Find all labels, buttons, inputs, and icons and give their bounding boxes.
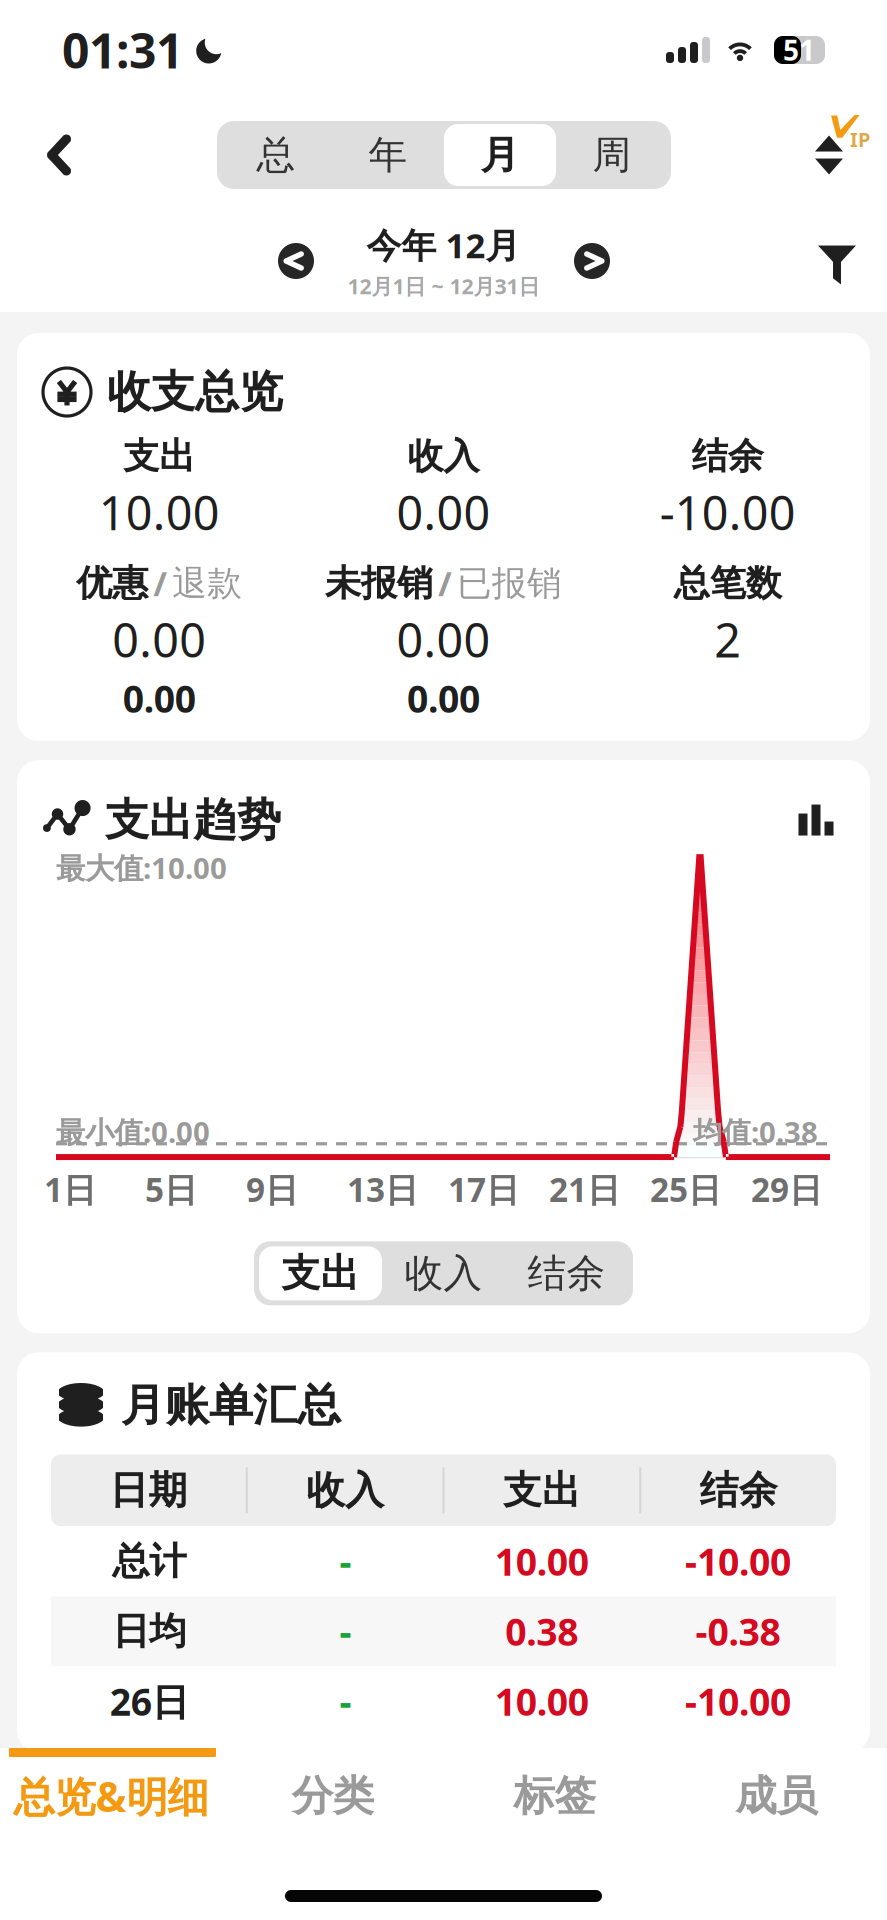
button[interactable]: 结余 [505,1246,628,1300]
staticText: 5日 [145,1167,197,1211]
staticText: - [339,1537,351,1586]
staticText: 收入 [306,1467,384,1514]
staticText: 日期 [109,1467,187,1514]
button[interactable]: 分类 [222,1757,444,1835]
staticText: 已报销 [457,562,562,605]
staticText: 13日 [347,1167,418,1211]
staticText: - [339,1677,351,1726]
staticText: 最小值:0.00 [56,1112,210,1151]
staticText: 25日 [650,1167,721,1211]
staticText: 月 [480,131,519,179]
staticText: 总 [256,131,295,179]
button[interactable]: 日均 [51,1596,836,1666]
staticText: 0.00 [407,673,480,723]
staticText: 总览&明细 [13,1769,208,1823]
staticText: 0.00 [112,608,206,670]
staticText: 周 [592,131,631,179]
staticText: 0.00 [123,673,196,723]
staticText: - [339,1607,351,1656]
staticText: 结余 [700,1467,778,1514]
button[interactable]: Previous month [278,243,314,279]
staticText: -0.38 [695,1607,780,1656]
staticText: 2 [714,608,741,670]
staticText: 支出趋势 [105,793,281,847]
staticText: 51 [783,31,815,69]
staticText: 退款 [172,562,242,605]
staticText: 9日 [246,1167,298,1211]
staticText: 10.00 [495,1677,589,1726]
staticText: 01:31 [62,18,183,82]
button[interactable]: Back [0,112,103,197]
staticText: 收支总览 [107,365,283,419]
button[interactable]: 周 [556,124,668,186]
button[interactable]: 支出 [259,1246,382,1300]
staticText: 12月1日 ~ 12月31日 [347,272,539,300]
staticText: 0.38 [505,1607,578,1656]
staticText: 收入 [407,434,479,478]
button[interactable]: Filter [792,219,887,302]
staticText: / [153,561,167,605]
staticText: 均值:0.38 [693,1112,818,1151]
button[interactable]: 总览&明细 [0,1757,222,1835]
button[interactable]: 成员 [665,1757,887,1835]
staticText: 支出 [503,1467,581,1514]
staticText: IP [850,126,870,153]
button[interactable]: Sort [785,123,887,186]
staticText: 10.00 [99,481,220,543]
staticText: 17日 [448,1167,519,1211]
staticText: 26日 [110,1677,189,1726]
staticText: 年 [368,131,407,179]
staticText: 未报销 [325,561,433,605]
staticText: 收入 [404,1250,482,1297]
staticText: 支出 [123,434,195,478]
button[interactable]: Next month [574,243,610,279]
staticText: 0.00 [396,481,490,543]
button[interactable]: 26日 [51,1666,836,1736]
staticText: 支出 [281,1250,359,1297]
staticText: 21日 [549,1167,620,1211]
staticText: 结余 [692,434,764,478]
staticText: 今年 12月 [366,222,520,268]
staticText: / [438,561,452,605]
button[interactable]: 年 [332,124,444,186]
staticText: 最大值:10.00 [56,848,227,887]
button[interactable]: 月 [444,124,556,186]
staticText: 总笔数 [674,561,782,605]
staticText: -10.00 [685,1677,791,1726]
button[interactable]: 标签 [443,1757,665,1835]
staticText: 总计 [112,1538,186,1584]
button[interactable]: Chart type [788,792,844,848]
staticText: 结余 [527,1250,605,1297]
staticText: 标签 [513,1771,595,1821]
staticText: 成员 [735,1771,817,1821]
staticText: 1日 [44,1167,96,1211]
staticText: -10.00 [660,481,796,543]
staticText: 29日 [751,1167,822,1211]
staticText: 0.00 [396,608,490,670]
staticText: 10.00 [495,1537,589,1586]
staticText: 分类 [292,1771,374,1821]
staticText: 月账单汇总 [121,1378,341,1432]
button[interactable]: 总计 [51,1526,836,1596]
button[interactable]: 收入 [382,1246,505,1300]
button[interactable]: 总 [220,124,332,186]
staticText: -10.00 [685,1537,791,1586]
staticText: 日均 [112,1608,186,1654]
staticText: 优惠 [76,561,148,605]
